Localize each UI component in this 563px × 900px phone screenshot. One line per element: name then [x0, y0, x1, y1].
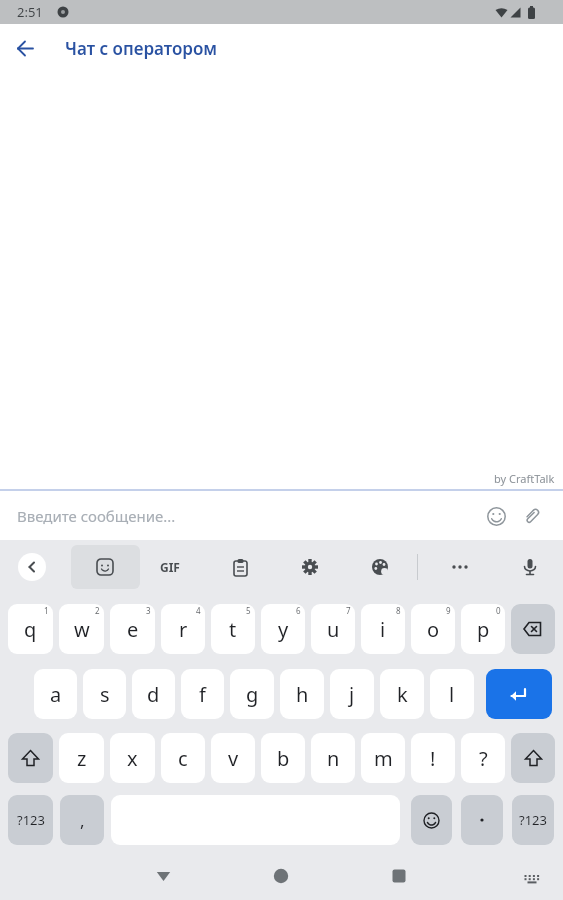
button[interactable] [461, 795, 503, 845]
staticText: b [277, 745, 290, 772]
button[interactable] [379, 856, 419, 896]
button[interactable] [481, 501, 511, 531]
staticText: q [24, 616, 37, 643]
staticText: l [449, 681, 455, 708]
button[interactable]: g [230, 669, 274, 719]
staticText: 9 [446, 605, 451, 616]
button[interactable]: m [361, 733, 405, 783]
staticText: Введите сообщение... [17, 506, 481, 526]
button[interactable] [411, 795, 452, 845]
button[interactable]: z [59, 733, 104, 783]
button[interactable]: r [161, 604, 205, 654]
button[interactable]: b [261, 733, 305, 783]
button[interactable] [228, 555, 252, 579]
button[interactable]: c [161, 733, 205, 783]
button[interactable]: u [311, 604, 355, 654]
staticText: , [80, 809, 85, 832]
button[interactable]: n [311, 733, 355, 783]
staticText: r [179, 616, 188, 643]
staticText: x [127, 745, 138, 772]
button[interactable] [368, 555, 392, 579]
button[interactable]: ! [411, 733, 455, 783]
staticText: s [100, 681, 110, 708]
staticText: 2 [95, 605, 100, 616]
staticText: i [380, 616, 386, 643]
button[interactable] [511, 604, 555, 654]
staticText: 1 [44, 605, 49, 616]
staticText: 8 [396, 605, 401, 616]
staticText: 7 [346, 605, 351, 616]
button[interactable]: o [411, 604, 455, 654]
button[interactable]: d [132, 669, 175, 719]
button[interactable]: j [330, 669, 374, 719]
button[interactable]: s [83, 669, 126, 719]
button[interactable]: i [361, 604, 405, 654]
staticText: ! [430, 745, 436, 772]
button[interactable] [517, 865, 547, 895]
button[interactable] [8, 733, 53, 783]
button[interactable]: h [280, 669, 324, 719]
staticText: 5 [246, 605, 251, 616]
button[interactable] [5, 28, 45, 68]
staticText: m [374, 745, 393, 772]
button[interactable]: e [110, 604, 155, 654]
button[interactable]: ? [461, 733, 505, 783]
staticText: a [50, 681, 62, 708]
button[interactable]: f [181, 669, 224, 719]
staticText: g [246, 681, 259, 708]
button[interactable] [298, 555, 322, 579]
button[interactable]: a [34, 669, 77, 719]
button[interactable] [511, 733, 555, 783]
button[interactable]: v [211, 733, 255, 783]
staticText: ? [479, 745, 488, 772]
staticText: k [397, 681, 408, 708]
staticText: z [77, 745, 87, 772]
button[interactable]: k [380, 669, 424, 719]
button[interactable]: ?123 [512, 795, 554, 845]
staticText: c [178, 745, 188, 772]
button[interactable]: l [430, 669, 474, 719]
staticText: 4 [196, 605, 201, 616]
staticText: 6 [296, 605, 301, 616]
staticText: t [229, 616, 237, 643]
button[interactable]: w [59, 604, 104, 654]
button[interactable] [517, 501, 547, 531]
button[interactable] [448, 555, 472, 579]
staticText: e [127, 616, 139, 643]
staticText: h [296, 681, 309, 708]
button[interactable] [18, 553, 46, 581]
staticText: n [327, 745, 340, 772]
button[interactable]: p [461, 604, 505, 654]
staticText: 0 [496, 605, 501, 616]
button[interactable]: t [211, 604, 255, 654]
staticText: GIF [160, 559, 180, 575]
staticText: p [477, 616, 490, 643]
button[interactable] [518, 555, 542, 579]
staticText: y [278, 616, 289, 643]
button[interactable]: y [261, 604, 305, 654]
staticText: Чат с оператором [65, 37, 218, 60]
button[interactable] [486, 669, 552, 719]
staticText: 2:51 [17, 3, 43, 21]
staticText: o [427, 616, 440, 643]
staticText: ?123 [17, 811, 45, 829]
staticText: u [327, 616, 340, 643]
button[interactable]: GIF [155, 552, 185, 582]
button[interactable]: q [8, 604, 53, 654]
staticText: v [228, 745, 239, 772]
staticText: ?123 [519, 811, 547, 829]
staticText: f [199, 681, 206, 708]
button[interactable]: , [60, 795, 104, 845]
button[interactable]: x [110, 733, 155, 783]
button[interactable] [93, 555, 117, 579]
staticText: w [74, 616, 90, 643]
button[interactable] [143, 856, 183, 896]
button[interactable] [261, 856, 301, 896]
button[interactable]: ?123 [8, 795, 53, 845]
staticText: j [349, 681, 355, 708]
staticText: by CraftTalk [494, 471, 555, 486]
staticText: d [147, 681, 160, 708]
staticText: 3 [146, 605, 151, 616]
